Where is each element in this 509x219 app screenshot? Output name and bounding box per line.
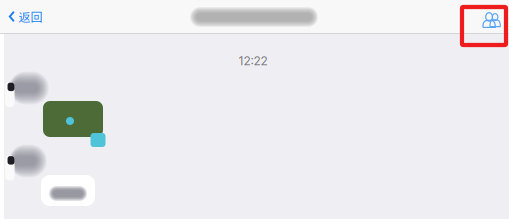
button[interactable]: Group members: [475, 3, 509, 36]
button[interactable]: 返回: [0, 0, 51, 33]
staticText: 12:22: [238, 54, 267, 68]
staticText: 返回: [19, 8, 43, 25]
